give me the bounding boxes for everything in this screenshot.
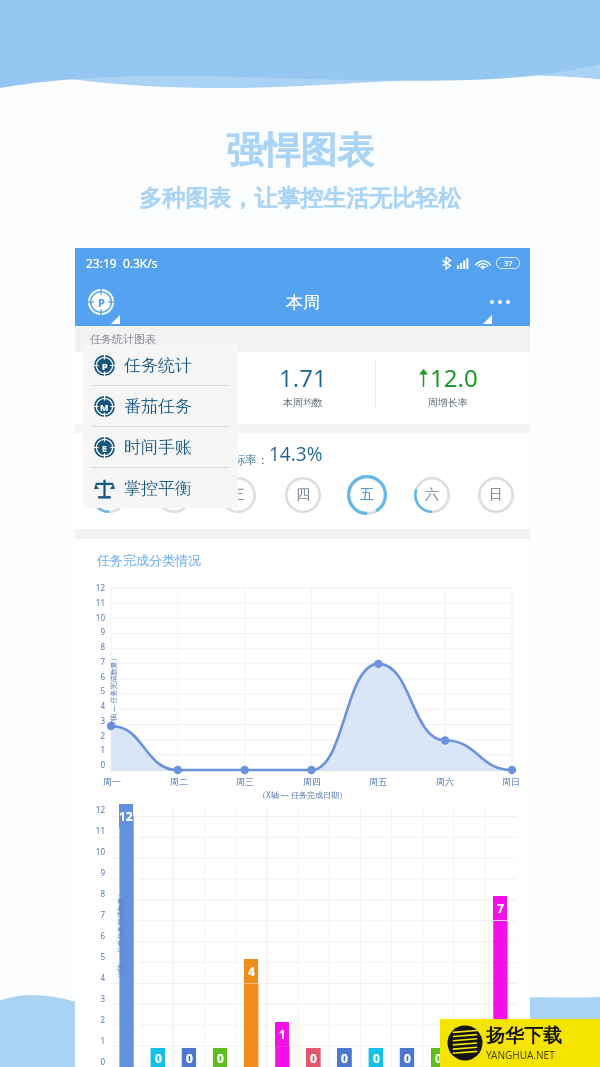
staticText: 周增长率 (428, 396, 468, 409)
staticText: 一 (102, 486, 116, 504)
staticText: 1 (89, 1035, 105, 1046)
staticText: 14.3% (269, 441, 323, 467)
button[interactable]: 四 (281, 473, 325, 517)
staticText: 0 (155, 1050, 162, 1066)
staticText: 4 (89, 700, 105, 711)
button[interactable]: 掌控平衡 (83, 468, 238, 508)
button[interactable]: 1.71 (231, 357, 375, 413)
button[interactable]: M (83, 386, 238, 426)
staticText: 掌控平衡 (124, 478, 192, 499)
staticText: 本周均数 (283, 396, 323, 409)
button[interactable]: 五 (345, 473, 389, 517)
staticText: 1 (89, 744, 105, 755)
staticText: 周六 (436, 776, 454, 787)
staticText: 10 (89, 612, 105, 623)
staticText: 2 (89, 1014, 105, 1025)
staticText: E (102, 442, 108, 454)
staticText: 0 (404, 1050, 411, 1066)
staticText: 0 (341, 1050, 348, 1066)
staticText: 六 (425, 486, 439, 504)
button[interactable]: 日 (474, 473, 518, 517)
staticText: 4 (248, 963, 255, 979)
staticText: 11 (89, 597, 105, 608)
staticText: 0 (435, 1050, 442, 1066)
staticText: YANGHUA.NET (486, 1048, 555, 1062)
staticText: 9 (89, 867, 105, 878)
staticText: （Y轴 — 分类任务完成数量） (116, 890, 126, 982)
staticText: 37 (504, 258, 513, 268)
staticText: （Y轴 — 任务完成数量） (109, 654, 119, 732)
button[interactable]: 12.0 (376, 357, 520, 413)
staticText: 0 (186, 1050, 193, 1066)
staticText: 强悍图表 (226, 127, 374, 174)
staticText: 12 (89, 582, 105, 593)
button[interactable]: 应用菜单 (84, 285, 118, 319)
button[interactable]: 更多 (484, 294, 516, 310)
staticText: 4 (89, 972, 105, 983)
staticText: 7 (497, 900, 504, 916)
staticText: 周一 (103, 776, 121, 787)
staticText: 任务完成分类情况 (97, 552, 201, 568)
button[interactable]: 三 (216, 473, 260, 517)
staticText: 任务统计 (124, 355, 192, 376)
button[interactable]: 二 (152, 473, 196, 517)
staticText: 12 (119, 808, 133, 824)
staticText: 0 (373, 1050, 380, 1066)
staticText: 0 (217, 1050, 224, 1066)
staticText: 3 (89, 715, 105, 726)
button[interactable] (85, 357, 230, 413)
staticText: 五 (360, 486, 374, 504)
staticText: 周五 (369, 776, 387, 787)
staticText: 本周 (286, 292, 320, 313)
staticText: 日 (489, 486, 503, 504)
staticText: 二 (167, 486, 181, 504)
staticText: 周三 (236, 776, 254, 787)
staticText: 周二 (170, 776, 188, 787)
staticText: 11 (89, 825, 105, 836)
staticText: 四 (296, 486, 310, 504)
staticText: 12.0 (430, 361, 478, 394)
staticText: 任务统计图表 (90, 332, 156, 346)
staticText: 9 (89, 626, 105, 637)
button[interactable]: E (83, 427, 238, 467)
staticText: 1.71 (279, 361, 327, 394)
staticText: （X轴 — 任务完成日期） (75, 789, 530, 800)
staticText: 三 (231, 486, 245, 504)
staticText: 0 (310, 1050, 317, 1066)
staticText: P (102, 360, 108, 372)
staticText: M (100, 401, 109, 413)
staticText: 3 (89, 993, 105, 1004)
staticText: 6 (89, 671, 105, 682)
staticText: 8 (89, 888, 105, 899)
staticText: 0 (89, 759, 105, 770)
button[interactable]: 一 (87, 473, 131, 517)
staticText: 扬华下载 (486, 1024, 562, 1048)
button[interactable]: 扬华下载 (440, 1019, 600, 1067)
staticText: 7 (89, 909, 105, 920)
staticText: 2 (89, 730, 105, 741)
staticText: 时间手账 (124, 437, 192, 458)
staticText: 0 (89, 1056, 105, 1067)
button[interactable]: 六 (410, 473, 454, 517)
staticText: 1 (279, 1026, 286, 1042)
staticText: 8 (89, 641, 105, 652)
staticText: 番茄任务 (124, 396, 192, 417)
staticText: 6 (89, 930, 105, 941)
staticText: 23:19 0.3K/s (86, 255, 158, 271)
staticText: 10 (89, 846, 105, 857)
staticText: P (98, 295, 105, 310)
staticText: 周日 (502, 776, 520, 787)
staticText: 5 (89, 685, 105, 696)
staticText: 7 (89, 656, 105, 667)
staticText: 达标率： (221, 452, 269, 467)
staticText: 0 (466, 1050, 473, 1066)
button[interactable]: P (83, 345, 238, 385)
staticText: 5 (89, 951, 105, 962)
staticText: 多种图表，让掌控生活无比轻松 (139, 184, 461, 213)
staticText: 周四 (303, 776, 321, 787)
staticText: 12 (89, 804, 105, 815)
